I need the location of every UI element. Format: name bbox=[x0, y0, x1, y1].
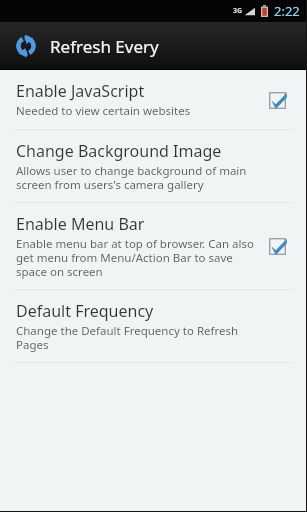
staticText: Allows user to change background of main… bbox=[16, 163, 255, 192]
staticText: Needed to view certain websites bbox=[16, 103, 191, 119]
staticText: Enable Menu Bar bbox=[16, 213, 145, 235]
staticText: Default Frequency bbox=[16, 300, 154, 322]
button[interactable]: Enable JavaScript bbox=[0, 70, 307, 129]
staticText: 2:22 bbox=[274, 2, 300, 20]
button[interactable]: Change Background Image bbox=[0, 130, 307, 202]
staticText: 3G bbox=[233, 6, 243, 16]
button[interactable]: Toggle setting bbox=[266, 235, 288, 257]
button[interactable]: Refresh Every bbox=[13, 22, 307, 70]
staticText: Change Background Image bbox=[16, 140, 222, 162]
staticText: Enable menu bar at top of browser. Can a… bbox=[16, 236, 255, 279]
staticText: Enable JavaScript bbox=[16, 80, 145, 102]
staticText: Refresh Every bbox=[50, 35, 159, 58]
button[interactable]: Enable Menu Bar bbox=[0, 203, 307, 289]
staticText: Change the Default Frequency to Refresh … bbox=[16, 323, 255, 352]
button[interactable]: Default Frequency bbox=[0, 290, 307, 362]
other: Refresh Every bbox=[13, 33, 39, 59]
button[interactable]: Toggle setting bbox=[266, 89, 288, 111]
